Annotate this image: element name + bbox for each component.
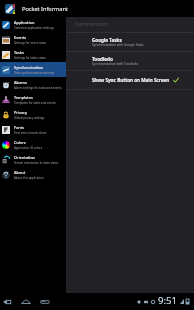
staticText: Application UI colors [14, 146, 43, 150]
button[interactable]: Google Tasks [66, 33, 194, 51]
button[interactable]: Home [21, 295, 31, 308]
staticText: Screen orientation in main views [14, 161, 59, 165]
staticText: Show Sync Button on Main Screen [92, 78, 170, 83]
staticText: Data synchronization settings [14, 71, 55, 75]
staticText: Privacy [14, 109, 27, 116]
staticText: Events [14, 34, 27, 41]
staticText: Templates for tasks and events [14, 101, 56, 105]
button[interactable]: Fonts [0, 122, 66, 137]
staticText: Tasks [14, 49, 24, 56]
staticText: Settings for tasks views [14, 56, 46, 60]
button[interactable]: Privacy [0, 107, 66, 122]
button[interactable]: Orientation [0, 152, 66, 167]
button[interactable]: Toodledo [66, 52, 194, 70]
button[interactable]: Alarms [0, 77, 66, 92]
staticText: Global privacy settings [14, 116, 45, 120]
button[interactable]: Synchronization [0, 62, 66, 77]
button[interactable]: Pocket Informant app icon [5, 4, 15, 14]
staticText: Synchronization [14, 64, 44, 71]
staticText: Colors [14, 139, 26, 146]
staticText: Synchronization [75, 22, 109, 27]
button[interactable]: Recent apps [40, 295, 50, 308]
staticText: Font sizes in main sheet [14, 131, 47, 135]
staticText: Pocket Informant [22, 6, 68, 12]
staticText: Templates [14, 94, 33, 101]
staticText: Settings for event views [14, 41, 47, 45]
button[interactable]: Show Sync Button on Main Screen [66, 71, 194, 89]
button[interactable]: Templates [0, 92, 66, 107]
staticText: Application [14, 19, 35, 26]
button[interactable]: About [0, 167, 66, 182]
button[interactable]: Back [2, 295, 12, 308]
staticText: 9:51 [158, 296, 177, 307]
staticText: About this application [14, 176, 44, 180]
staticText: Fonts [14, 124, 25, 131]
button[interactable]: Events [0, 32, 66, 47]
button[interactable]: Tasks [0, 47, 66, 62]
staticText: Common application settings [14, 26, 54, 30]
button[interactable]: Colors [0, 137, 66, 152]
staticText: About [14, 169, 26, 176]
staticText: Orientation [14, 154, 36, 161]
staticText: Google Tasks [92, 38, 122, 43]
staticText: Alarm settings for tasks and events [14, 86, 62, 90]
staticText: Toodledo [92, 57, 113, 62]
staticText: Synchronization with Google Tasks [92, 43, 144, 47]
staticText: Alarms [14, 79, 27, 86]
staticText: Synchronization with Toodledo [92, 62, 138, 66]
button[interactable]: Application [0, 17, 66, 32]
